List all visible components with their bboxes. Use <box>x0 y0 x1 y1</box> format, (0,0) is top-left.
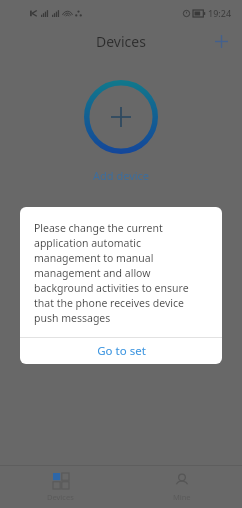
button[interactable]: Devices <box>0 466 121 508</box>
staticText: Mine <box>173 492 191 502</box>
button[interactable]: Add device <box>82 78 160 156</box>
button[interactable]: Go to set <box>20 338 222 364</box>
staticText: Devices <box>96 32 146 51</box>
staticText: Devices <box>47 492 74 502</box>
staticText: Add device <box>93 168 150 183</box>
button[interactable]: Add device <box>208 28 234 54</box>
staticText: Go to set <box>97 343 146 359</box>
staticText: 19:24 <box>208 7 232 19</box>
staticText: Please change the current application au… <box>34 221 208 325</box>
